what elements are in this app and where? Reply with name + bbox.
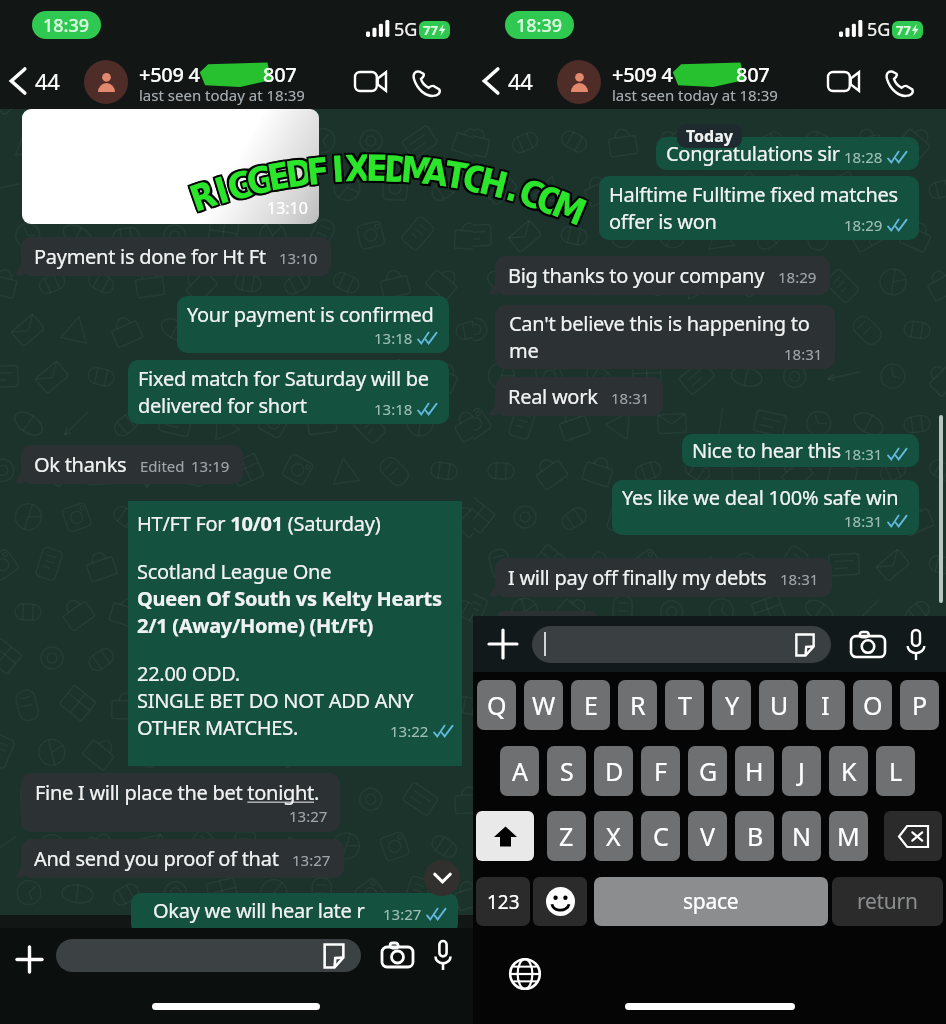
button[interactable]: T	[665, 680, 704, 730]
staticText: 2/1 (Away/Home) (Ht/Ft)	[137, 612, 374, 639]
button[interactable]: H	[735, 746, 774, 796]
button[interactable]: Camera	[382, 943, 413, 968]
staticText: F	[305, 148, 332, 192]
button[interactable]: N	[782, 811, 821, 861]
button[interactable]: Camera	[851, 632, 885, 658]
button[interactable]: 13:10	[22, 109, 319, 224]
staticText: F	[305, 150, 332, 194]
button[interactable]: O	[853, 680, 892, 730]
button[interactable]: Z	[547, 811, 586, 861]
button[interactable]: P	[900, 680, 939, 730]
staticText: H	[478, 159, 515, 206]
button[interactable]: E	[571, 680, 610, 730]
staticText: G	[223, 162, 260, 210]
button[interactable]: J	[782, 746, 821, 796]
staticText: A	[418, 152, 449, 197]
staticText: +509 4	[612, 61, 673, 88]
staticText: F	[307, 148, 334, 192]
staticText: G	[225, 162, 262, 209]
button[interactable]: R	[618, 680, 657, 730]
staticText: C	[460, 159, 492, 205]
button[interactable]: Fixed match for Saturday will be	[128, 360, 449, 424]
button[interactable]: Video call	[827, 71, 860, 92]
button[interactable]: Voice message	[906, 630, 926, 660]
button[interactable]: Nice to hear this	[682, 434, 919, 467]
staticText: E	[366, 148, 389, 190]
button[interactable]: Payment is done for Ht Ft	[21, 237, 331, 276]
button[interactable]: D	[594, 746, 633, 796]
button[interactable]: V	[688, 811, 727, 861]
button[interactable]: Yes like we deal 100% safe win	[612, 480, 919, 535]
staticText: X	[342, 148, 368, 190]
button[interactable]	[56, 939, 361, 972]
button[interactable]: Ok thanks	[21, 445, 243, 484]
staticText: .	[501, 169, 525, 213]
button[interactable]: F	[641, 746, 680, 796]
staticText: A	[420, 152, 451, 197]
button[interactable]: And send you proof of that	[21, 839, 344, 878]
staticText: Fixed match for Saturday will be	[138, 365, 429, 392]
button[interactable]: B	[735, 811, 774, 861]
button[interactable]: Scroll to bottom	[424, 860, 460, 896]
staticText: U	[770, 688, 788, 722]
staticText: C	[653, 819, 669, 853]
button[interactable]: space	[594, 877, 828, 926]
staticText: Fine I will place the bet tonight.	[35, 779, 320, 806]
button[interactable]: Backspace	[884, 811, 942, 861]
button[interactable]: S	[547, 746, 586, 796]
button[interactable]: L	[876, 746, 915, 796]
button[interactable]: C	[641, 811, 680, 861]
staticText: I	[329, 151, 344, 193]
button[interactable]: I will pay off finally my debts	[495, 558, 832, 597]
button[interactable]: 123	[476, 877, 530, 926]
button[interactable]: Change keyboard	[509, 958, 541, 990]
button[interactable]: Back	[8, 64, 60, 98]
staticText: A	[421, 148, 452, 193]
button[interactable]: Q	[477, 680, 516, 730]
staticText: 18:28	[844, 147, 883, 167]
button[interactable]: Congratulations sir	[656, 137, 919, 170]
button[interactable]: U	[759, 680, 798, 730]
staticText: E	[262, 154, 293, 200]
button[interactable]: Big thanks to your company	[495, 256, 830, 295]
button[interactable]: Your payment is confirmed	[177, 296, 449, 353]
staticText: .	[499, 167, 524, 211]
button[interactable]: Voice message	[434, 941, 452, 970]
button[interactable]: Back	[481, 64, 533, 98]
button[interactable]: Halftime Fulltime fixed matches	[599, 176, 919, 240]
button[interactable]: Video call	[354, 71, 387, 92]
staticText: last seen today at 18:39	[612, 85, 778, 105]
button[interactable]: G	[688, 746, 727, 796]
button[interactable]: HT/FT For 10/01 (Saturday)	[128, 501, 462, 766]
staticText: F	[303, 152, 330, 196]
staticText: H	[476, 158, 513, 206]
button[interactable]: Call	[885, 70, 914, 97]
button[interactable]: Attach	[489, 630, 517, 658]
staticText: I	[210, 169, 235, 213]
staticText: G	[243, 157, 278, 204]
button[interactable]: K	[829, 746, 868, 796]
button[interactable]: W	[524, 680, 563, 730]
button[interactable]: return	[832, 877, 943, 926]
button[interactable]: Shift	[476, 811, 534, 861]
button[interactable]: A	[500, 746, 539, 796]
button[interactable]: I	[806, 680, 845, 730]
staticText: R	[185, 175, 223, 223]
staticText: 13:27	[383, 904, 422, 924]
button[interactable]: M	[829, 811, 868, 861]
button[interactable]: Can't believe this is happening to	[495, 305, 835, 369]
button[interactable]: Fine I will place the bet tonight.	[21, 773, 340, 832]
button[interactable]: Real work	[495, 377, 663, 416]
button[interactable]	[532, 626, 831, 663]
staticText: M	[837, 819, 860, 853]
staticText: C	[459, 159, 491, 205]
staticText: 13:27	[292, 850, 331, 870]
staticText: M	[401, 151, 438, 196]
staticText: 123	[487, 889, 520, 915]
button[interactable]: Y	[712, 680, 751, 730]
button[interactable]: Attach	[17, 947, 42, 972]
button[interactable]: X	[594, 811, 633, 861]
button[interactable]: Okay we will hear late r	[131, 893, 458, 934]
button[interactable]: Call	[412, 70, 441, 97]
button[interactable]: Emoji	[533, 877, 587, 926]
